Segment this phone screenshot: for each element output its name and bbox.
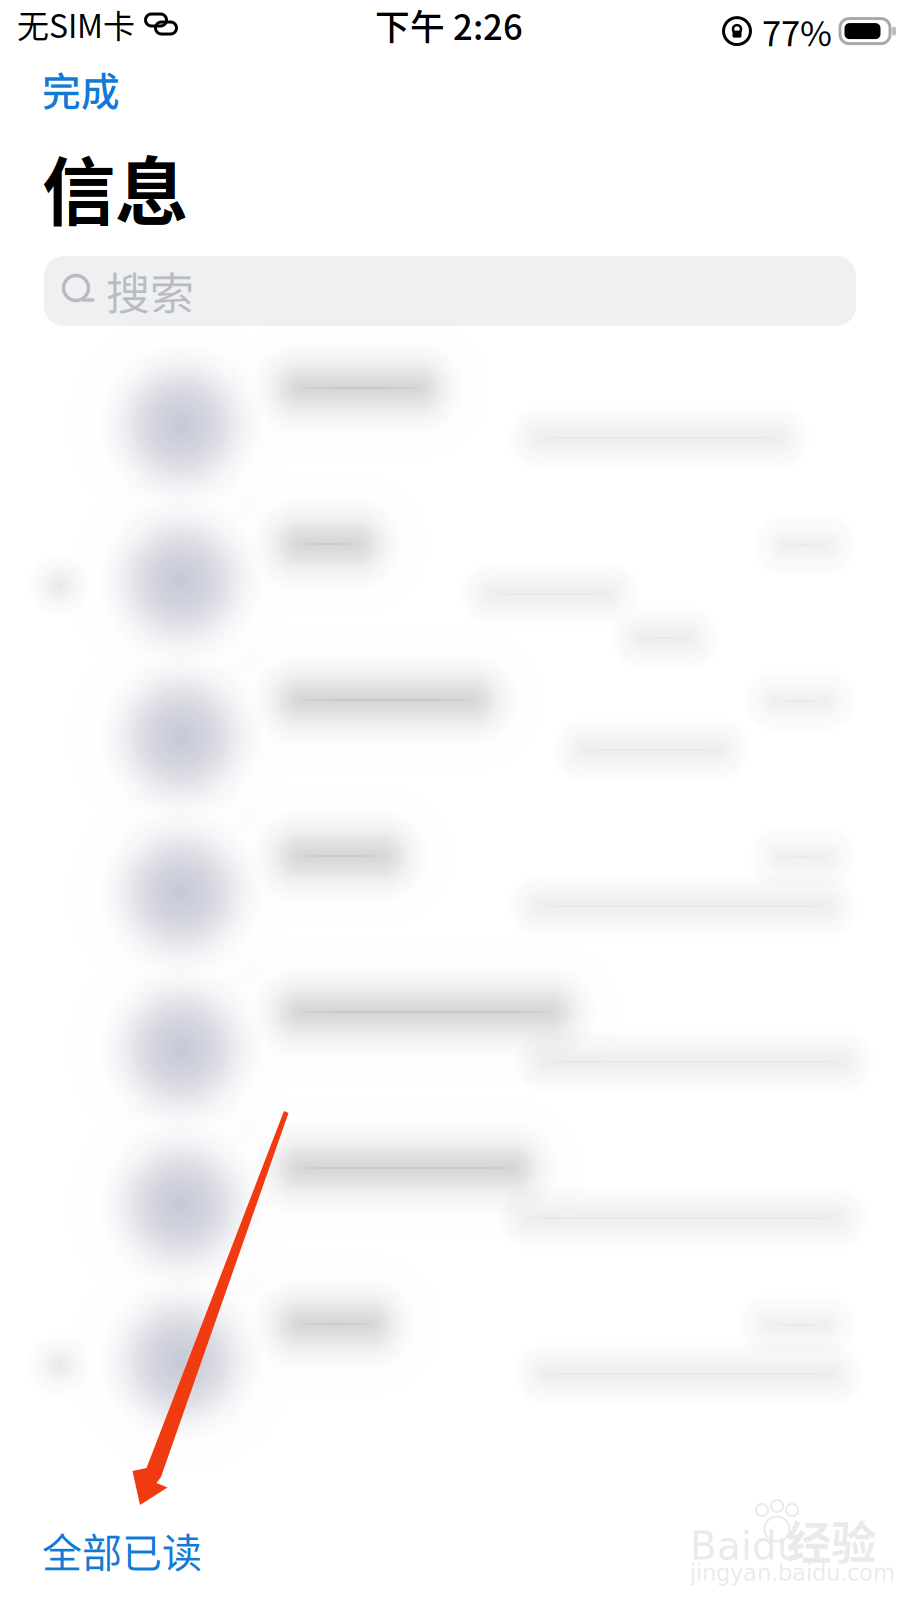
staticText: 搜索 [106,259,194,323]
staticText: 经验 [786,1507,876,1573]
button[interactable]: 搜索 [44,256,856,326]
staticText: jingyan.baidu.com [690,1560,895,1586]
button[interactable]: 完成 [42,58,162,120]
staticText: 完成 [42,61,120,117]
staticText: 下午 2:26 [375,0,523,50]
staticText: 全部已读 [42,1521,202,1579]
staticText: 信息 [42,134,188,240]
staticText: Baidu [690,1523,802,1568]
staticText: 无SIM卡 [17,1,135,47]
staticText: 77% [762,6,832,56]
button[interactable]: 全部已读 [42,1518,272,1582]
